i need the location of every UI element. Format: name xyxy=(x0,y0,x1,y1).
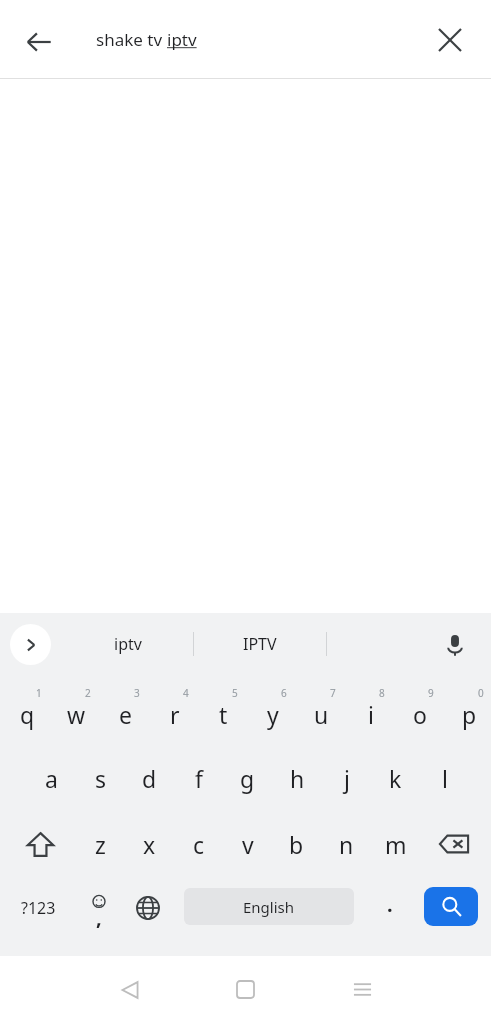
staticText: a xyxy=(45,763,58,794)
button[interactable]: j xyxy=(322,749,371,807)
button[interactable]: Search xyxy=(424,887,478,926)
staticText: iptv xyxy=(167,28,197,51)
button[interactable]: Comma, emoji xyxy=(76,879,122,937)
staticText: l xyxy=(442,763,448,794)
staticText: English xyxy=(243,897,295,917)
staticText: e xyxy=(119,699,132,730)
button[interactable]: a xyxy=(27,749,76,807)
staticText: i xyxy=(368,699,374,730)
staticText: u xyxy=(314,699,329,730)
button[interactable]: shake tv xyxy=(96,0,396,79)
button[interactable]: Clear search xyxy=(424,14,476,66)
staticText: k xyxy=(389,763,402,794)
staticText: o xyxy=(413,699,427,730)
button[interactable]: Shift xyxy=(5,815,75,873)
button[interactable]: k xyxy=(371,749,420,807)
button[interactable]: Back xyxy=(11,14,67,70)
staticText: 0 xyxy=(478,686,484,700)
staticText: w xyxy=(67,699,86,730)
button[interactable]: l xyxy=(420,749,469,807)
staticText: x xyxy=(143,829,156,860)
staticText: 6 xyxy=(281,686,287,700)
button[interactable]: n xyxy=(322,815,371,873)
staticText: ?123 xyxy=(21,897,56,919)
staticText: . xyxy=(387,891,393,918)
button[interactable]: ?123 xyxy=(5,879,71,937)
button[interactable]: Expand suggestions xyxy=(10,624,51,665)
staticText: 8 xyxy=(379,686,385,700)
button[interactable]: Change language xyxy=(125,879,171,937)
staticText: 2 xyxy=(85,686,91,700)
staticText: , xyxy=(96,904,102,931)
staticText: IPTV xyxy=(243,633,277,655)
button[interactable]: c xyxy=(174,815,223,873)
staticText: 1 xyxy=(36,686,42,700)
button[interactable]: 3 xyxy=(101,679,150,741)
button[interactable]: m xyxy=(371,815,420,873)
staticText: b xyxy=(289,829,304,860)
staticText: shake tv xyxy=(96,28,167,51)
staticText: q xyxy=(20,699,35,730)
staticText: d xyxy=(142,763,157,794)
staticText: 7 xyxy=(330,686,336,700)
button[interactable]: Voice input xyxy=(432,622,478,668)
staticText: iptv xyxy=(114,633,142,655)
button[interactable]: English xyxy=(184,888,354,925)
staticText: s xyxy=(95,763,107,794)
staticText: 9 xyxy=(428,686,434,700)
button[interactable]: 4 xyxy=(150,679,199,741)
button[interactable]: v xyxy=(223,815,272,873)
button[interactable]: Recent apps xyxy=(330,956,394,1023)
button[interactable]: 7 xyxy=(297,679,346,741)
button[interactable]: iptv xyxy=(62,613,193,675)
button[interactable]: 8 xyxy=(346,679,395,741)
button[interactable]: d xyxy=(125,749,174,807)
button[interactable]: 0 xyxy=(445,679,491,741)
button[interactable]: s xyxy=(76,749,125,807)
button[interactable]: 1 xyxy=(3,679,52,741)
button[interactable]: 5 xyxy=(199,679,248,741)
staticText: r xyxy=(170,699,180,730)
button[interactable]: f xyxy=(174,749,223,807)
button[interactable]: 6 xyxy=(248,679,297,741)
button[interactable]: Home xyxy=(213,956,277,1023)
staticText: c xyxy=(193,829,205,860)
staticText: p xyxy=(462,699,477,730)
button[interactable]: g xyxy=(223,749,272,807)
staticText: 4 xyxy=(183,686,189,700)
staticText: y xyxy=(267,699,279,730)
staticText: g xyxy=(240,763,255,794)
button[interactable]: z xyxy=(76,815,125,873)
staticText: 3 xyxy=(134,686,140,700)
staticText: j xyxy=(344,763,350,794)
button[interactable]: IPTV xyxy=(194,613,325,675)
button[interactable]: Back xyxy=(98,956,162,1023)
button[interactable]: 2 xyxy=(52,679,101,741)
staticText: n xyxy=(339,829,354,860)
button[interactable]: 9 xyxy=(395,679,444,741)
staticText: v xyxy=(242,829,254,860)
button[interactable]: h xyxy=(273,749,322,807)
staticText: t xyxy=(219,699,228,730)
staticText: h xyxy=(290,763,305,794)
staticText: m xyxy=(385,829,407,860)
staticText: 5 xyxy=(232,686,238,700)
staticText: z xyxy=(95,829,106,860)
button[interactable]: x xyxy=(125,815,174,873)
button[interactable]: . xyxy=(364,879,416,937)
button[interactable]: Backspace xyxy=(419,815,489,873)
staticText: f xyxy=(195,763,203,794)
button[interactable]: b xyxy=(272,815,321,873)
